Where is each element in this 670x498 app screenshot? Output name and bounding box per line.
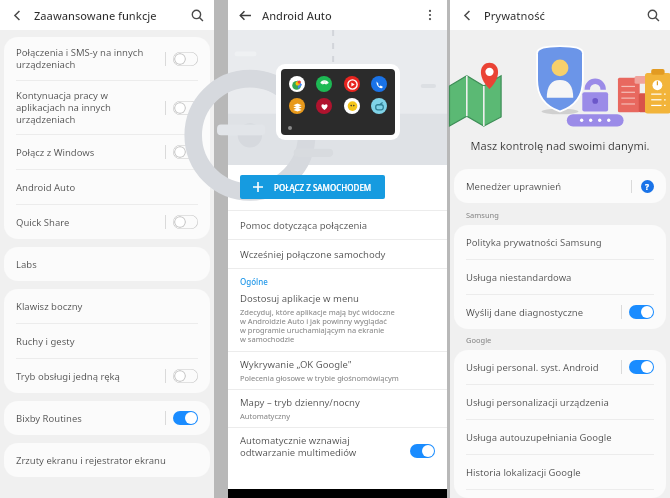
staticText: Labs [16,258,37,271]
button[interactable]: Pomoc dotycząca połączenia [228,211,447,239]
button[interactable] [629,360,654,374]
button[interactable]: Wyślij dane diagnostyczne [454,295,666,329]
button[interactable] [173,215,198,229]
staticText: Automatycznie wznawiaj odtwarzanie multi… [240,434,410,459]
staticText: Menedżer uprawnień [466,180,562,193]
staticText: Usługa autouzupełniania Google [466,431,612,444]
button[interactable]: Tryb obsługi jedną ręką [4,359,210,393]
staticText: Wykrywanie „OK Google" [240,358,352,371]
button[interactable]: Back [456,4,478,26]
button[interactable]: Zrzuty ekranu i rejestrator ekranu [4,443,210,477]
button[interactable]: Search [642,4,664,26]
staticText: Masz kontrolę nad swoimi danymi. [450,138,670,153]
button[interactable] [173,411,198,425]
button[interactable]: Help [641,180,654,193]
staticText: Quick Share [16,216,70,229]
button[interactable]: Menedżer uprawnień [454,169,666,203]
button[interactable]: Wykrywanie „OK Google" [228,352,447,389]
button[interactable]: Ruchy i gesty [4,324,210,358]
button[interactable] [173,52,198,66]
button[interactable]: Bixby Routines [4,401,210,435]
button[interactable]: Search [186,4,208,26]
button[interactable]: Android Auto [4,170,210,204]
staticText: Prywatność [484,8,545,23]
button[interactable]: Usługa autouzupełniania Google [454,420,666,454]
staticText: Android Auto [16,181,76,194]
staticText: ? [645,181,650,193]
button[interactable]: Usługi personal. syst. Android [454,350,666,384]
button[interactable]: Historia lokalizacji Google [454,455,666,489]
staticText: Tryb obsługi jedną ręką [16,370,120,383]
staticText: Wyślij dane diagnostyczne [466,306,584,319]
staticText: Dostosuj aplikacje w menu [240,292,359,305]
staticText: Połączenia i SMS-y na innych urządzeniac… [16,46,144,71]
staticText: Usługi personalizacji urządzenia [466,396,609,409]
button[interactable] [410,444,435,458]
button[interactable]: Quick Share [4,205,210,239]
button[interactable]: Dostosuj aplikacje w menu [228,292,447,351]
staticText: Klawisz boczny [16,300,83,313]
button[interactable]: Back [234,4,256,26]
staticText: Połącz z Windows [16,146,95,159]
staticText: Pomoc dotycząca połączenia [240,219,368,232]
button[interactable]: Usługi personalizacji urządzenia [454,385,666,419]
staticText: Bixby Routines [16,412,82,425]
button[interactable]: POŁĄCZ Z SAMOCHODEM [240,175,385,199]
staticText: POŁĄCZ Z SAMOCHODEM [274,182,372,193]
button[interactable]: Wcześniej połączone samochody [228,240,447,268]
button[interactable]: Labs [4,247,210,281]
staticText: Zrzuty ekranu i rejestrator ekranu [16,454,166,467]
staticText: Historia lokalizacji Google [466,466,581,479]
staticText: Polityka prywatności Samsung [466,236,602,249]
staticText: Ruchy i gesty [16,335,75,348]
staticText: Mapy – tryb dzienny/nocny [240,396,360,409]
button[interactable]: Kontynuacja pracy w aplikacjach na innyc… [4,81,210,134]
staticText: Polecenia głosowe w trybie głośnomówiący… [240,373,399,383]
button[interactable]: Automatycznie wznawiaj odtwarzanie multi… [228,428,447,489]
staticText: Zaawansowane funkcje [34,8,157,23]
button[interactable]: Usługa niestandardowa [454,260,666,294]
staticText: Automatyczny [240,411,291,421]
button[interactable]: Mapy – tryb dzienny/nocny [228,390,447,427]
button[interactable]: More options [419,4,441,26]
staticText: Ogólne [240,276,268,287]
button[interactable] [173,369,198,383]
staticText: Kontynuacja pracy w aplikacjach na innyc… [16,89,111,126]
staticText: Wcześniej połączone samochody [240,248,386,261]
button[interactable]: Połączenia i SMS-y na innych urządzeniac… [4,37,210,80]
button[interactable] [173,145,198,159]
button[interactable]: Polityka prywatności Samsung [454,225,666,259]
staticText: Android Auto [262,8,332,23]
button[interactable]: Klawisz boczny [4,289,210,323]
staticText: Zdecyduj, które aplikacje mają być widoc… [240,307,395,345]
button[interactable]: Połącz z Windows [4,135,210,169]
staticText: Usługi personal. syst. Android [466,361,599,374]
staticText: Google [466,335,492,345]
staticText: Samsung [466,210,499,220]
button[interactable]: Back [6,4,28,26]
button[interactable] [173,101,198,115]
button[interactable] [629,305,654,319]
staticText: Usługa niestandardowa [466,271,572,284]
